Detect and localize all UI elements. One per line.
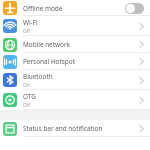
staticText: Personal Hotspot bbox=[23, 57, 75, 66]
button[interactable]: Offline mode bbox=[0, 0, 150, 16]
button[interactable]: Offline mode toggle bbox=[125, 3, 144, 14]
button[interactable]: Status bar and notification bbox=[0, 120, 150, 137]
staticText: Status bar and notification bbox=[23, 124, 103, 133]
staticText: Bluetooth bbox=[23, 72, 53, 81]
staticText: Wi-Fi bbox=[23, 18, 38, 27]
staticText: Offline mode bbox=[23, 4, 63, 13]
button[interactable]: Mobile network bbox=[0, 36, 150, 53]
staticText: Off bbox=[23, 102, 31, 109]
button[interactable]: Wi-Fi bbox=[0, 16, 150, 36]
button[interactable]: Bluetooth bbox=[0, 70, 150, 90]
staticText: OTG bbox=[23, 92, 36, 101]
staticText: Off bbox=[23, 28, 31, 35]
button[interactable]: Personal Hotspot bbox=[0, 53, 150, 70]
staticText: Mobile network bbox=[23, 40, 70, 49]
staticText: On bbox=[23, 82, 30, 89]
button[interactable]: OTG bbox=[0, 90, 150, 110]
